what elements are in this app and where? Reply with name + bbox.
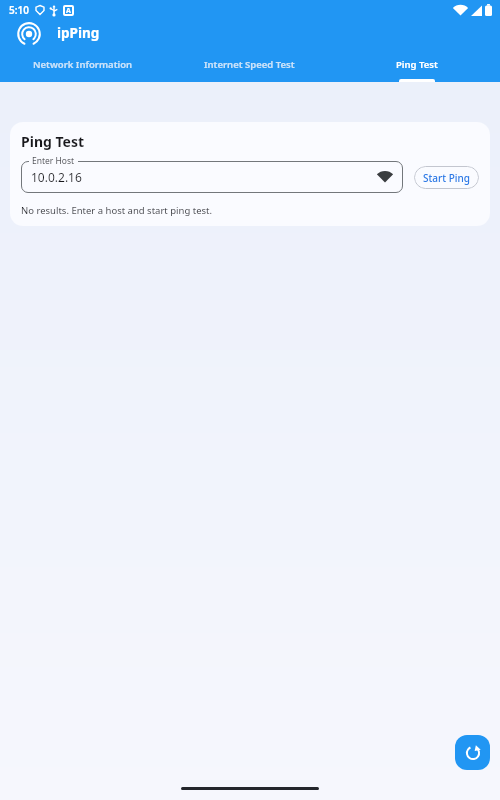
button[interactable]: Network Information [0, 46, 166, 82]
staticText: No results. Enter a host and start ping … [21, 204, 213, 217]
staticText: Enter Host [32, 155, 75, 167]
staticText: Ping Test [21, 132, 85, 151]
staticText: Network Information [33, 58, 133, 71]
button[interactable]: Start Ping [414, 166, 479, 189]
staticText: Start Ping [423, 171, 470, 185]
button[interactable] [455, 735, 490, 770]
staticText: 10.0.2.16 [31, 169, 82, 185]
button[interactable]: Internet Speed Test [166, 46, 333, 82]
staticText: ipPing [57, 24, 100, 42]
button[interactable]: 10.0.2.16 [21, 161, 403, 193]
staticText: Ping Test [396, 58, 438, 71]
staticText: 5:10 [9, 3, 29, 17]
staticText: A [66, 6, 71, 16]
staticText: Internet Speed Test [204, 58, 295, 71]
button[interactable]: Ping Test [333, 46, 500, 82]
